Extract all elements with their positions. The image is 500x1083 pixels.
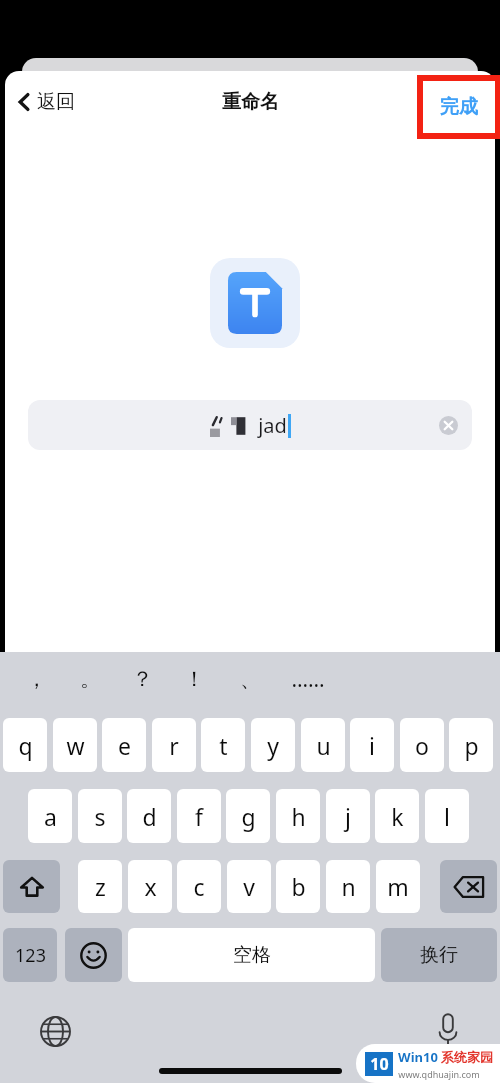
staticText: c xyxy=(193,871,205,902)
staticText: w xyxy=(66,730,85,761)
button[interactable]: m xyxy=(376,860,420,913)
staticText: m xyxy=(387,871,409,902)
button[interactable]: f xyxy=(177,789,221,843)
staticText: z xyxy=(95,871,106,902)
button[interactable]: ？ xyxy=(120,660,164,698)
button[interactable]: …… xyxy=(286,660,330,698)
staticText: d xyxy=(142,801,157,832)
button[interactable]: x xyxy=(128,860,172,913)
staticText: 重命名 xyxy=(222,90,279,114)
staticText: 空格 xyxy=(233,943,271,967)
staticText: e xyxy=(118,730,131,761)
button[interactable]: g xyxy=(226,789,270,843)
staticText: g xyxy=(241,801,256,832)
button[interactable]: 、 xyxy=(228,660,272,698)
staticText: 返回 xyxy=(37,90,75,114)
staticText: x xyxy=(144,871,157,902)
staticText: 10 xyxy=(370,1053,389,1075)
button[interactable]: t xyxy=(201,718,245,772)
staticText: ， xyxy=(26,666,47,692)
button[interactable]: 123 xyxy=(3,928,57,982)
staticText: o xyxy=(415,730,429,761)
button[interactable]: Voice input xyxy=(429,1010,467,1048)
staticText: n xyxy=(341,871,356,902)
staticText: r xyxy=(169,730,179,761)
button[interactable]: Change keyboard xyxy=(37,1013,73,1049)
staticText: k xyxy=(391,801,404,832)
staticText: 123 xyxy=(15,943,46,968)
staticText: t xyxy=(219,730,228,761)
button[interactable]: a xyxy=(28,789,72,843)
button[interactable]: q xyxy=(3,718,47,772)
button[interactable]: 空格 xyxy=(128,928,375,982)
button[interactable]: Shift xyxy=(3,860,60,913)
staticText: q xyxy=(18,730,33,761)
staticText: 。 xyxy=(80,666,101,692)
staticText: l xyxy=(444,801,450,832)
button[interactable]: 完成 xyxy=(423,81,495,133)
staticText: …… xyxy=(291,665,325,694)
staticText: b xyxy=(291,871,306,902)
button[interactable]: 返回 xyxy=(13,84,80,120)
button[interactable]: k xyxy=(375,789,419,843)
button[interactable]: Emoji xyxy=(65,928,122,982)
staticText: 换行 xyxy=(420,943,458,967)
button[interactable]: v xyxy=(227,860,271,913)
staticText: f xyxy=(195,801,203,832)
staticText: y xyxy=(267,730,279,761)
staticText: u xyxy=(316,730,331,761)
button[interactable]: n xyxy=(326,860,370,913)
staticText: 系统家园 xyxy=(441,1049,493,1065)
staticText: h xyxy=(291,801,306,832)
button[interactable]: j xyxy=(326,789,370,843)
button[interactable]: Backspace xyxy=(440,860,497,913)
staticText: 、 xyxy=(240,666,261,692)
staticText: v xyxy=(243,871,255,902)
staticText: i xyxy=(369,730,375,761)
staticText: 完成 xyxy=(440,95,478,119)
button[interactable]: i xyxy=(350,718,394,772)
button[interactable]: b xyxy=(276,860,320,913)
button[interactable]: p xyxy=(449,718,493,772)
button[interactable]: 。 xyxy=(68,660,112,698)
button[interactable]: 换行 xyxy=(381,928,497,982)
button[interactable]: z xyxy=(78,860,122,913)
button[interactable]: h xyxy=(276,789,320,843)
button[interactable]: ！ xyxy=(172,660,216,698)
button[interactable]: c xyxy=(177,860,221,913)
button[interactable]: Clear text xyxy=(434,411,462,439)
staticText: jad xyxy=(258,412,287,439)
button[interactable]: w xyxy=(53,718,97,772)
staticText: p xyxy=(464,730,479,761)
button[interactable]: e xyxy=(102,718,146,772)
staticText: j xyxy=(345,801,351,832)
button[interactable]: u xyxy=(301,718,345,772)
staticText: Win10 xyxy=(398,1048,438,1066)
staticText: ！ xyxy=(184,666,205,692)
button[interactable]: jad xyxy=(28,400,472,450)
staticText: www.qdhuajin.com xyxy=(398,1068,480,1080)
staticText: ？ xyxy=(132,666,153,692)
button[interactable]: s xyxy=(78,789,122,843)
staticText: s xyxy=(94,801,106,832)
button[interactable]: r xyxy=(152,718,196,772)
button[interactable]: d xyxy=(127,789,171,843)
button[interactable]: l xyxy=(425,789,469,843)
button[interactable]: o xyxy=(400,718,444,772)
staticText: a xyxy=(44,801,57,832)
button[interactable]: y xyxy=(251,718,295,772)
button[interactable]: ， xyxy=(14,660,58,698)
